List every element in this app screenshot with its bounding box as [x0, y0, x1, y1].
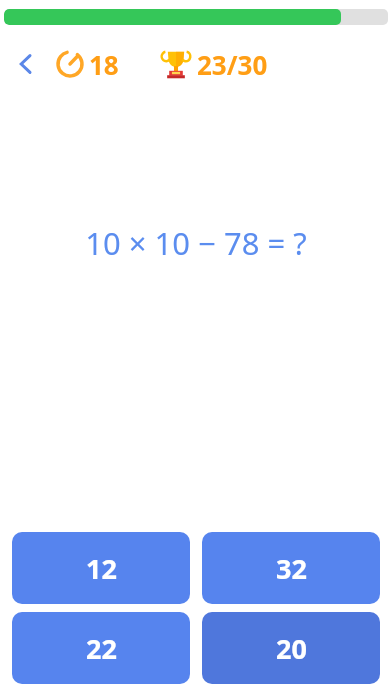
staticText: 18 — [89, 47, 119, 82]
staticText: 12 — [86, 550, 117, 587]
staticText: 32 — [276, 550, 307, 587]
button[interactable]: 12 — [12, 532, 190, 604]
button[interactable]: 20 — [202, 612, 380, 684]
staticText: 20 — [276, 630, 307, 667]
staticText: 23/30 — [197, 47, 268, 82]
button[interactable]: 32 — [202, 532, 380, 604]
staticText: 10 × 10 − 78 = ? — [0, 222, 392, 264]
staticText: 22 — [86, 630, 117, 667]
button[interactable]: Back — [10, 48, 42, 80]
button[interactable]: 22 — [12, 612, 190, 684]
